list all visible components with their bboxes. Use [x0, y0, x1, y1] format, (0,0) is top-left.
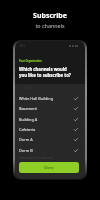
button[interactable]: Cafeteria	[15, 124, 85, 134]
staticText: Dorm A	[19, 137, 33, 142]
staticText: Which channels would you like to subscri…	[19, 66, 71, 78]
button[interactable]: Dorm B	[15, 145, 85, 155]
staticText: Your Organisation	[19, 59, 42, 62]
button[interactable]: Dorm A	[15, 134, 85, 144]
staticText: 9:41	[19, 44, 25, 48]
staticText: White Hall Building	[19, 96, 54, 101]
staticText: Basement	[19, 106, 37, 111]
staticText: Subscribed to 6 channels	[19, 156, 53, 160]
button[interactable]: Building A	[15, 114, 85, 124]
staticText: Dorm B	[19, 148, 33, 153]
staticText: Done	[44, 165, 54, 170]
button[interactable]: White Hall Building	[15, 93, 85, 103]
staticText: Building A	[19, 117, 38, 122]
button[interactable]: Basement	[15, 103, 85, 113]
staticText: to channels	[35, 22, 65, 29]
button[interactable]: Done	[19, 162, 79, 173]
staticText: Cafeteria	[19, 127, 36, 132]
staticText: Subscribe	[33, 11, 67, 21]
